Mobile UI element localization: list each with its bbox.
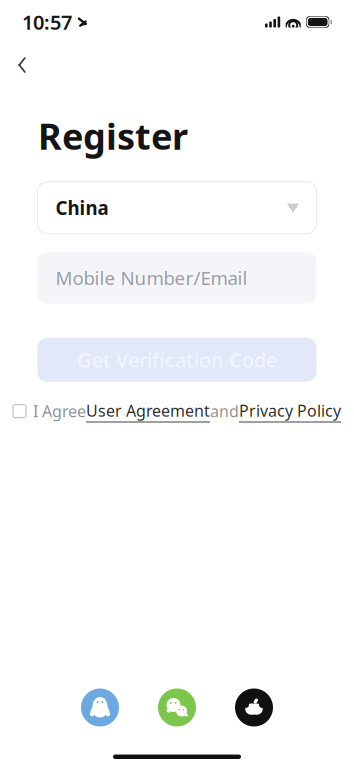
staticText: China [55,195,108,220]
button[interactable]: User Agreement [86,400,210,422]
button[interactable]: Sign in with Apple [235,688,273,726]
button[interactable]: I agree checkbox [13,405,33,418]
staticText: Privacy Policy [239,400,341,421]
button[interactable]: Sign in with WeChat [158,688,196,726]
staticText: Mobile Number/Email [55,265,247,290]
button[interactable]: Privacy Policy [239,400,341,422]
button[interactable]: Back [0,45,44,85]
button[interactable]: Mobile Number/Email [37,252,316,304]
button[interactable]: China [37,182,316,234]
staticText: Register [38,112,188,160]
staticText: 10:57 [22,9,72,35]
staticText: I Agree [33,400,86,422]
staticText: and [210,400,239,422]
button[interactable]: Sign in with QQ [81,688,119,726]
staticText: Get Verification Code [77,346,277,373]
staticText: User Agreement [86,400,210,421]
button[interactable]: Get Verification Code [37,338,316,382]
